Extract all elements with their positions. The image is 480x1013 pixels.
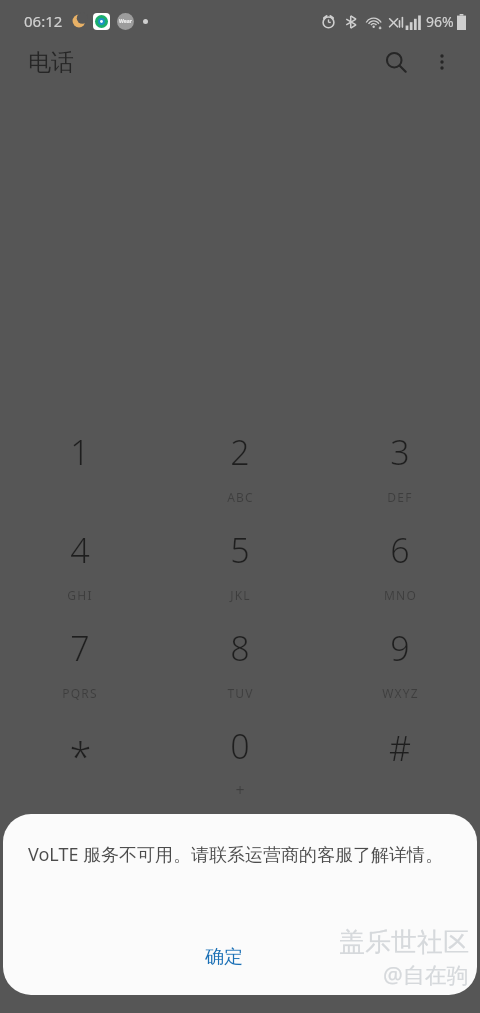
- button[interactable]: More options: [420, 40, 464, 84]
- staticText: 8: [230, 625, 250, 671]
- staticText: 96%: [426, 12, 454, 31]
- staticText: JKL: [230, 587, 251, 603]
- staticText: 1: [70, 429, 90, 475]
- button[interactable]: 7: [0, 619, 160, 717]
- button[interactable]: 3: [320, 423, 480, 521]
- button[interactable]: 5: [160, 521, 320, 619]
- button[interactable]: 9: [320, 619, 480, 717]
- staticText: WXYZ: [382, 685, 419, 701]
- staticText: 6: [390, 527, 410, 573]
- staticText: 电话: [28, 48, 74, 77]
- button[interactable]: 8: [160, 619, 320, 717]
- staticText: MNO: [384, 587, 417, 603]
- staticText: 盖乐世社区: [339, 926, 469, 959]
- staticText: +: [235, 779, 245, 801]
- staticText: 06:12: [24, 11, 63, 31]
- staticText: DEF: [387, 489, 413, 505]
- button[interactable]: 2: [160, 423, 320, 521]
- button[interactable]: Search: [372, 38, 420, 86]
- button[interactable]: 4: [0, 521, 160, 619]
- staticText: 确定: [205, 945, 243, 969]
- staticText: ABC: [227, 489, 254, 505]
- staticText: *: [69, 729, 92, 783]
- staticText: TUV: [227, 685, 254, 701]
- staticText: PQRS: [62, 685, 98, 701]
- button[interactable]: 0: [160, 717, 320, 815]
- staticText: 9: [390, 625, 410, 671]
- staticText: VoLTE 服务不可用。请联系运营商的客服了解详情。: [28, 842, 444, 867]
- staticText: GHI: [67, 587, 93, 603]
- staticText: 0: [230, 723, 250, 769]
- staticText: Wear: [119, 18, 132, 25]
- button[interactable]: 确定: [189, 939, 259, 975]
- button[interactable]: #: [320, 717, 480, 815]
- staticText: 3: [390, 429, 410, 475]
- button[interactable]: *: [0, 717, 160, 815]
- staticText: 2: [230, 429, 250, 475]
- button[interactable]: 6: [320, 521, 480, 619]
- staticText: @自在驹: [383, 959, 469, 989]
- staticText: #: [389, 725, 411, 771]
- staticText: 5: [230, 527, 250, 573]
- staticText: 7: [70, 625, 90, 671]
- staticText: 4: [70, 527, 90, 573]
